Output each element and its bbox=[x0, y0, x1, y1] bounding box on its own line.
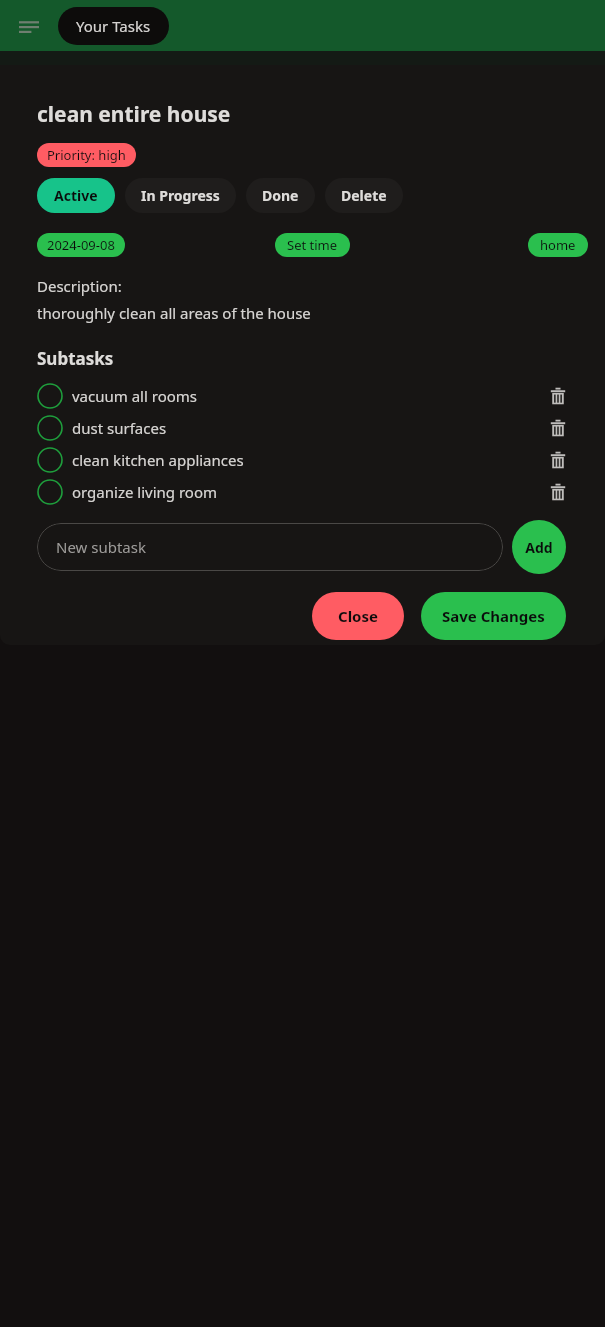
button[interactable]: home bbox=[528, 233, 588, 257]
button[interactable]: Toggle vacuum all rooms bbox=[36, 380, 571, 412]
staticText: thoroughly clean all areas of the house bbox=[37, 303, 311, 323]
staticText: Set time bbox=[287, 236, 338, 254]
button[interactable]: Your Tasks bbox=[58, 7, 169, 45]
button[interactable]: Delete subtask bbox=[545, 447, 571, 473]
button[interactable]: Add bbox=[512, 520, 566, 574]
button[interactable]: Save Changes bbox=[421, 592, 566, 640]
staticText: dust surfaces bbox=[72, 418, 167, 438]
staticText: vacuum all rooms bbox=[72, 386, 198, 406]
button[interactable]: Delete subtask bbox=[545, 415, 571, 441]
staticText: Close bbox=[338, 606, 378, 626]
button[interactable]: In Progress bbox=[125, 178, 236, 213]
staticText: Add bbox=[525, 538, 553, 557]
button[interactable]: Toggle vacuum all rooms bbox=[36, 382, 64, 410]
staticText: home bbox=[540, 236, 576, 254]
button[interactable]: 2024-09-08 bbox=[37, 233, 125, 257]
staticText: Save Changes bbox=[442, 606, 545, 626]
staticText: New subtask bbox=[56, 537, 146, 557]
staticText: clean kitchen appliances bbox=[72, 450, 244, 470]
button[interactable]: Toggle organize living room bbox=[36, 476, 571, 508]
staticText: Priority: high bbox=[47, 146, 126, 164]
staticText: Description: bbox=[37, 276, 122, 296]
button[interactable]: Close bbox=[312, 592, 404, 640]
button[interactable]: Done bbox=[246, 178, 315, 213]
staticText: organize living room bbox=[72, 482, 218, 502]
button[interactable]: Set time bbox=[275, 233, 350, 257]
button[interactable]: New subtask bbox=[37, 523, 503, 571]
button[interactable]: Toggle organize living room bbox=[36, 478, 64, 506]
button[interactable]: Toggle clean kitchen appliances bbox=[36, 444, 571, 476]
staticText: Subtasks bbox=[37, 347, 114, 370]
button[interactable]: Toggle clean kitchen appliances bbox=[36, 446, 64, 474]
button[interactable]: Toggle dust surfaces bbox=[36, 414, 64, 442]
button[interactable]: Menu bbox=[14, 11, 44, 41]
button[interactable]: Active bbox=[37, 178, 115, 213]
staticText: clean entire house bbox=[37, 100, 231, 129]
staticText: Active bbox=[54, 186, 98, 205]
staticText: 2024-09-08 bbox=[47, 236, 115, 254]
staticText: In Progress bbox=[141, 186, 220, 205]
button[interactable]: Priority: high bbox=[37, 143, 136, 167]
staticText: Done bbox=[262, 186, 299, 205]
button[interactable]: Toggle dust surfaces bbox=[36, 412, 571, 444]
button[interactable]: Delete bbox=[325, 178, 403, 213]
staticText: Delete bbox=[341, 186, 387, 205]
staticText: Your Tasks bbox=[76, 16, 151, 36]
button[interactable]: Delete subtask bbox=[545, 479, 571, 505]
button[interactable]: Delete subtask bbox=[545, 383, 571, 409]
